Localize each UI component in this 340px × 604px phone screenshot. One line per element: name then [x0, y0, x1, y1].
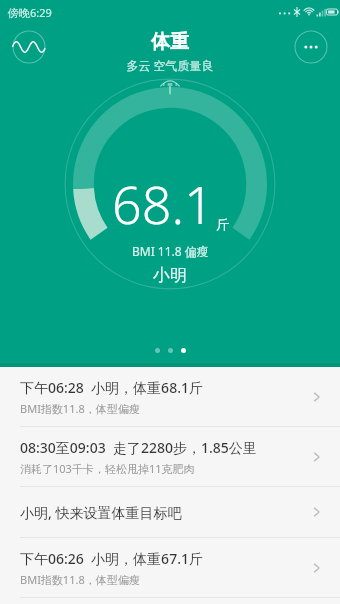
staticText: 小明	[153, 265, 187, 286]
staticText: 斤	[216, 216, 229, 232]
button[interactable]: 小明, 快来设置体重目标吧	[0, 487, 340, 537]
button[interactable]: 08:30至09:03 走了2280步，1.85公里	[0, 427, 340, 486]
staticText: BMI指数11.8，体型偏瘦	[20, 572, 140, 587]
staticText: 消耗了103千卡，轻松甩掉11克肥肉	[20, 461, 195, 476]
button[interactable]: 下午06:28 小明，体重68.1斤	[0, 367, 340, 426]
staticText: BMI 11.8 偏瘦	[132, 243, 209, 259]
staticText: 多云 空气质量良	[126, 57, 214, 73]
staticText: BMI指数11.8，体型偏瘦	[20, 401, 140, 416]
staticText: 体重	[151, 30, 189, 54]
button[interactable]: More options	[294, 30, 328, 64]
staticText: 傍晚6:29	[8, 5, 52, 20]
staticText: 68.1	[112, 168, 214, 239]
staticText: 小明, 快来设置体重目标吧	[20, 503, 182, 522]
staticText: 下午06:28 小明，体重68.1斤	[20, 378, 203, 397]
staticText: 下午06:26 小明，体重67.1斤	[20, 549, 203, 568]
button[interactable]: Trends	[12, 30, 46, 64]
button[interactable]: 下午06:26 小明，体重67.1斤	[0, 538, 340, 597]
staticText: 08:30至09:03 走了2280步，1.85公里	[20, 438, 257, 457]
